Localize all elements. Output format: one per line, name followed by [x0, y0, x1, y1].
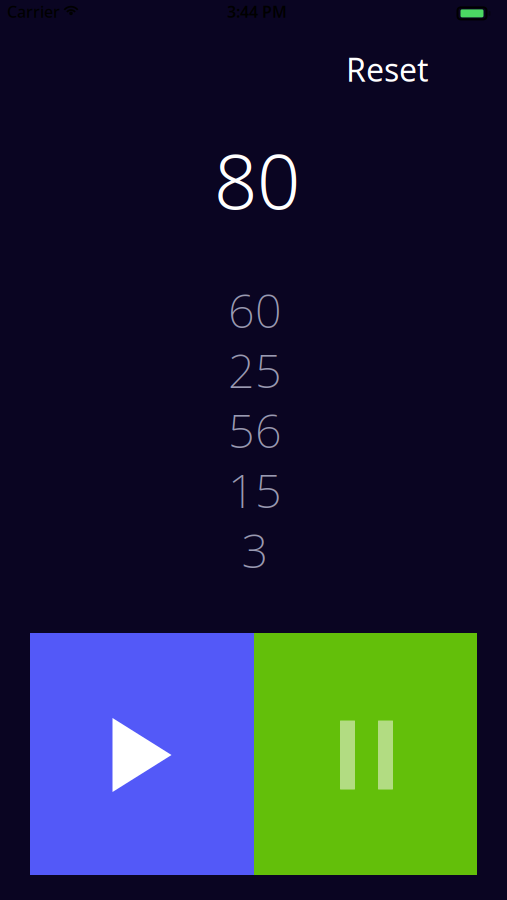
- staticText: 15: [228, 459, 282, 521]
- button[interactable]: Pause: [254, 633, 477, 875]
- staticText: 56: [228, 399, 282, 461]
- staticText: 25: [228, 339, 282, 401]
- staticText: Reset: [346, 48, 429, 90]
- staticText: 60: [228, 279, 282, 341]
- button[interactable]: Start: [30, 633, 254, 875]
- staticText: 3: [241, 519, 268, 581]
- button[interactable]: Reset: [334, 42, 441, 96]
- staticText: 80: [214, 129, 300, 230]
- staticText: 3:44 PM: [227, 1, 287, 22]
- staticText: Carrier: [7, 1, 60, 22]
